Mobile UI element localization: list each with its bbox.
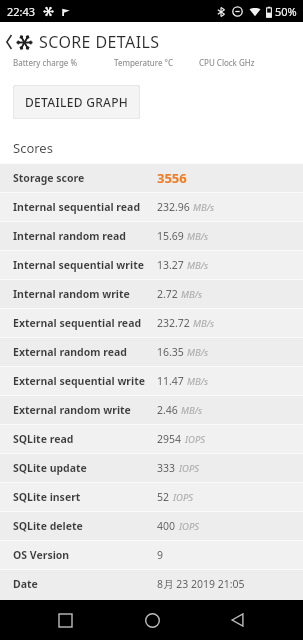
button[interactable]: External sequential read — [0, 309, 303, 337]
staticText: 2.46 — [157, 403, 178, 417]
button[interactable]: Internal random write — [0, 280, 303, 308]
staticText: SCORE DETAILS — [39, 31, 160, 53]
button[interactable]: Date — [0, 570, 303, 598]
staticText: Date — [13, 577, 157, 591]
button[interactable]: Internal sequential read — [0, 193, 303, 221]
staticText: IOPS — [179, 520, 200, 533]
staticText: Internal random read — [13, 229, 157, 243]
button[interactable]: Home — [130, 600, 174, 640]
button[interactable]: Back — [3, 27, 16, 57]
button[interactable]: External sequential write — [0, 367, 303, 395]
staticText: SQLite update — [13, 461, 157, 475]
staticText: External random read — [13, 345, 157, 359]
staticText: External sequential write — [13, 374, 157, 388]
staticText: 11.47 — [157, 374, 184, 388]
staticText: DETAILED GRAPH — [25, 94, 129, 110]
staticText: 3556 — [157, 169, 187, 187]
staticText: 22:43 — [7, 4, 36, 19]
staticText: 8月 23 2019 21:05 — [157, 577, 245, 591]
staticText: Internal random write — [13, 287, 157, 301]
staticText: Storage score — [13, 171, 157, 185]
staticText: 15.69 — [157, 229, 184, 243]
button[interactable]: External random read — [0, 338, 303, 366]
button[interactable]: DETAILED GRAPH — [13, 85, 140, 119]
staticText: 333 — [157, 461, 176, 475]
button[interactable]: SQLite delete — [0, 512, 303, 540]
staticText: IOPS — [173, 491, 194, 504]
staticText: 2954 — [157, 432, 182, 446]
staticText: MB/s — [181, 288, 203, 301]
staticText: 50% — [275, 4, 297, 19]
button[interactable]: OS Version — [0, 541, 303, 569]
staticText: 400 — [157, 519, 176, 533]
staticText: 232.72 — [157, 316, 190, 330]
staticText: Temperature °C — [114, 57, 173, 68]
button[interactable]: Back — [216, 600, 260, 640]
button[interactable]: SQLite update — [0, 454, 303, 482]
staticText: MB/s — [187, 259, 209, 272]
button[interactable]: SQLite read — [0, 425, 303, 453]
staticText: 9 — [157, 548, 164, 562]
staticText: SQLite read — [13, 432, 157, 446]
button[interactable]: SQLite insert — [0, 483, 303, 511]
button[interactable]: Internal sequential write — [0, 251, 303, 279]
staticText: MB/s — [187, 375, 209, 388]
staticText: 2.72 — [157, 287, 178, 301]
staticText: Internal sequential write — [13, 258, 157, 272]
staticText: OS Version — [13, 548, 157, 562]
button[interactable]: External random write — [0, 396, 303, 424]
staticText: CPU Clock GHz — [199, 57, 255, 68]
staticText: 16.35 — [157, 345, 184, 359]
staticText: Scores — [13, 139, 53, 157]
staticText: Internal sequential read — [13, 200, 157, 214]
staticText: 232.96 — [157, 200, 190, 214]
staticText: External random write — [13, 403, 157, 417]
staticText: 52 — [157, 490, 170, 504]
staticText: MB/s — [193, 201, 215, 214]
staticText: External sequential read — [13, 316, 157, 330]
staticText: SQLite delete — [13, 519, 157, 533]
staticText: Battery charge % — [13, 57, 78, 68]
staticText: IOPS — [185, 433, 206, 446]
staticText: SQLite insert — [13, 490, 157, 504]
button[interactable]: Internal random read — [0, 222, 303, 250]
button[interactable]: Recent apps — [43, 600, 87, 640]
staticText: MB/s — [193, 317, 215, 330]
button[interactable]: Storage score — [0, 164, 303, 192]
staticText: MB/s — [187, 230, 209, 243]
staticText: IOPS — [179, 462, 200, 475]
staticText: 13.27 — [157, 258, 184, 272]
staticText: MB/s — [181, 404, 203, 417]
staticText: MB/s — [187, 346, 209, 359]
